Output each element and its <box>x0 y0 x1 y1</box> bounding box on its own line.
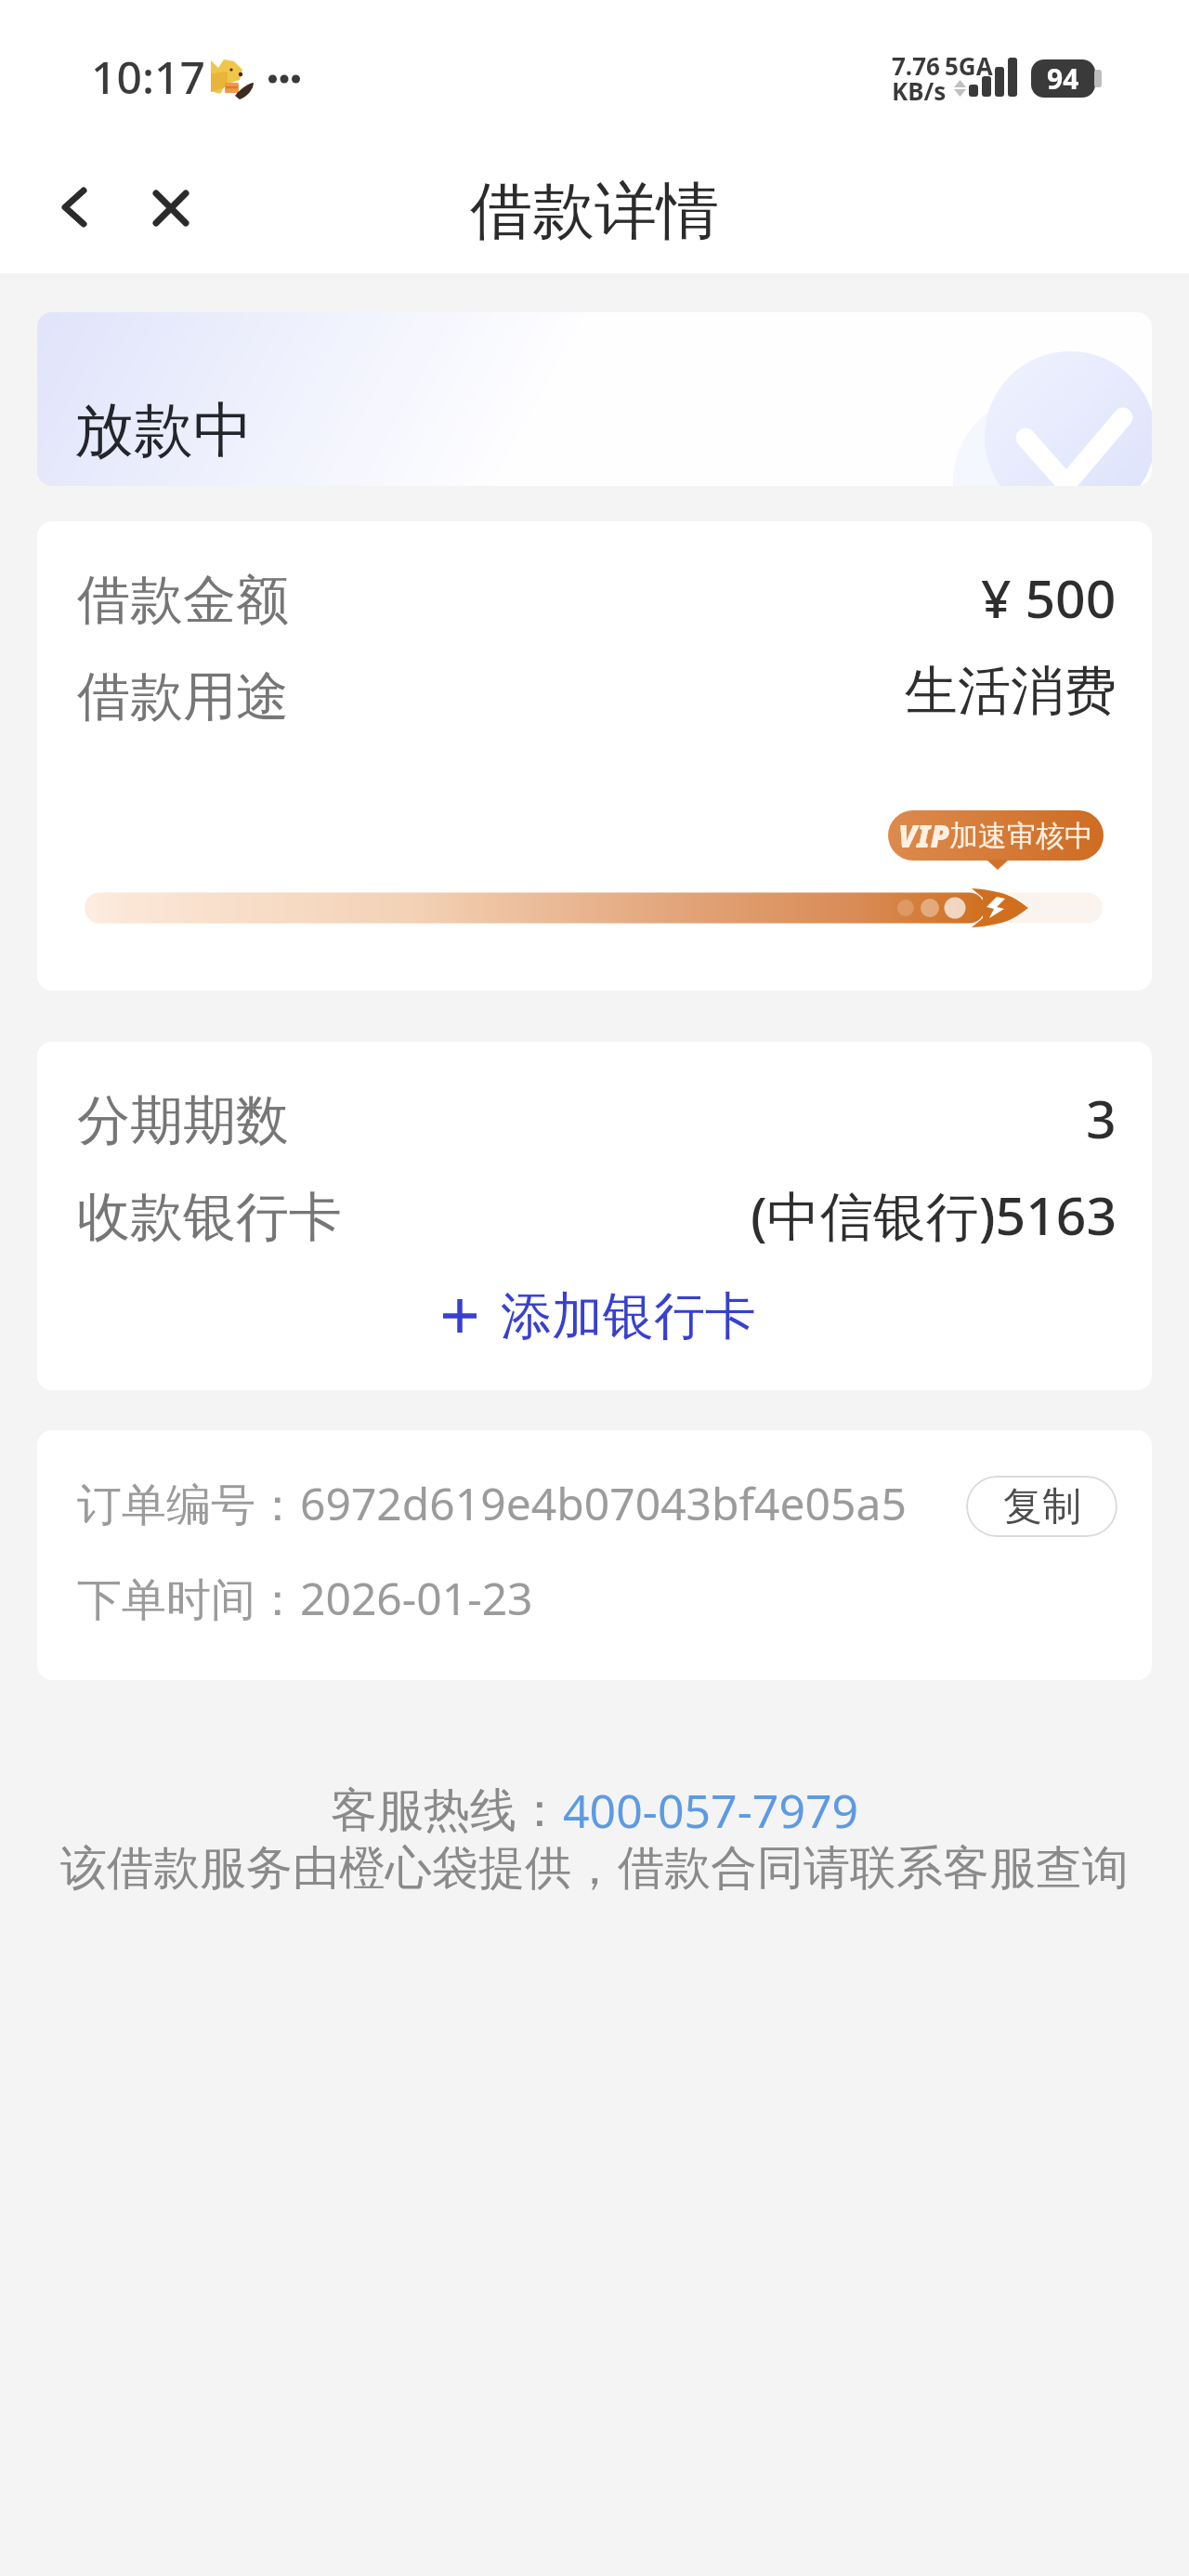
staticText: 下单时间：2026-01-23 <box>77 1568 533 1629</box>
staticText: 放款中 <box>74 393 253 468</box>
staticText: 94 <box>1047 59 1079 98</box>
staticText: 分期期数 <box>77 1087 289 1154</box>
staticText: 借款用途 <box>77 664 289 730</box>
button[interactable]: Close <box>135 172 196 233</box>
staticText: 该借款服务由橙心袋提供，借款合同请联系客服查询 <box>60 1839 1129 1898</box>
button[interactable]: 放款中 <box>37 312 1152 486</box>
staticText: 生活消费 <box>905 658 1117 725</box>
staticText: 借款详情 <box>470 172 719 250</box>
button[interactable]: 添加银行卡 <box>37 1274 1152 1358</box>
button[interactable]: 400-057-7979 <box>563 1779 859 1842</box>
staticText: 加速审核中 <box>949 818 1093 854</box>
button[interactable]: 复制 <box>966 1476 1117 1537</box>
staticText: (中信银行)5163 <box>751 1178 1117 1251</box>
staticText: 3 <box>1086 1082 1117 1154</box>
staticText: ¥ 500 <box>981 561 1117 634</box>
staticText: 订单编号：6972d619e4b07043bf4e05a5 <box>77 1473 907 1534</box>
staticText: 收款银行卡 <box>77 1184 342 1251</box>
staticText: VIP <box>898 815 949 857</box>
staticText: 复制 <box>1003 1482 1081 1531</box>
staticText: 10:17 <box>91 46 205 107</box>
staticText: 客服热线： <box>331 1781 563 1840</box>
staticText: KB/s <box>892 74 947 107</box>
staticText: 借款金额 <box>77 567 289 634</box>
staticText: 5GA <box>945 49 993 82</box>
button[interactable]: Back <box>44 170 105 231</box>
staticText: 7.76 <box>892 49 940 82</box>
staticText: 添加银行卡 <box>501 1284 756 1348</box>
